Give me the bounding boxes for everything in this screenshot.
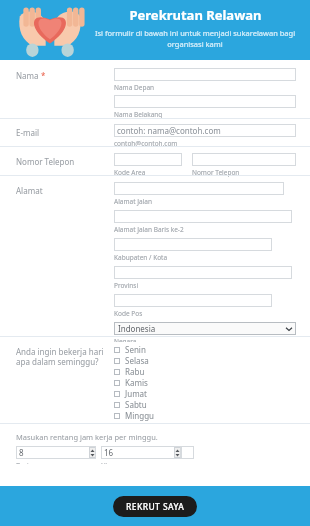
staticText: Hingga (101, 461, 124, 464)
staticText: Indonesia (118, 323, 156, 334)
staticText: Kamis (125, 377, 148, 388)
staticText: Alamat (16, 185, 43, 196)
button[interactable]: REKRUT SAYA (113, 496, 197, 517)
staticText: Nomor Telepon (16, 156, 75, 167)
staticText: contoh: nama@contoh.com (117, 125, 221, 136)
staticText: Nomor Telepon (192, 168, 240, 177)
button[interactable]: contoh: nama@contoh.com (114, 124, 296, 137)
staticText: Kode Pos (114, 309, 143, 318)
staticText: Minggu (125, 410, 155, 421)
button[interactable]: Sabtu (114, 399, 147, 410)
staticText: Nama Depan (114, 83, 155, 92)
button[interactable]: Selasa (114, 355, 149, 366)
staticText: Masukan rentang jam kerja per minggu. (16, 432, 158, 442)
staticText: Sabtu (125, 399, 147, 410)
button[interactable]: 8 (16, 446, 96, 459)
button[interactable]: Kamis (114, 377, 148, 388)
button[interactable] (114, 210, 292, 223)
button[interactable]: 16 (101, 446, 181, 459)
button[interactable] (114, 294, 272, 307)
staticText: Provinsi (114, 281, 139, 290)
button[interactable] (114, 238, 272, 251)
staticText: 16 (104, 447, 174, 458)
staticText: Anda ingin bekerja hari apa dalam seming… (16, 346, 108, 367)
staticText: Isi formulir di bawah ini untuk menjadi … (86, 28, 304, 49)
staticText: Rabu (125, 366, 145, 377)
other: Stepper (89, 447, 96, 458)
staticText: 8 (19, 447, 89, 458)
staticText: Negara (114, 337, 137, 342)
button[interactable]: Negara (114, 322, 296, 335)
button[interactable] (114, 68, 296, 81)
button[interactable]: Jumat (114, 388, 147, 399)
staticText: Perekrutan Relawan (129, 6, 262, 24)
button[interactable] (114, 182, 284, 195)
staticText: Nama (16, 70, 39, 81)
button[interactable] (192, 153, 296, 166)
staticText: Kabupaten / Kota (114, 253, 168, 262)
staticText: Selasa (125, 355, 149, 366)
staticText: * (41, 70, 46, 81)
button[interactable]: Senin (114, 344, 146, 355)
staticText: Senin (125, 344, 146, 355)
staticText: contoh@contoh.com (114, 139, 178, 148)
staticText: Alamat Jalan (114, 197, 152, 206)
staticText: E-mail (16, 127, 40, 138)
staticText: REKRUT SAYA (126, 501, 185, 513)
button[interactable]: Minggu (114, 410, 155, 421)
staticText: Dari (16, 461, 29, 464)
button[interactable]: Rabu (114, 366, 145, 377)
other: Stepper (174, 447, 181, 458)
staticText: Jumat (125, 388, 147, 399)
staticText: Alamat Jalan Baris ke-2 (114, 225, 184, 234)
staticText: Kode Area (114, 168, 146, 177)
button[interactable] (114, 266, 292, 279)
staticText: Nama Belakang (114, 110, 163, 119)
button[interactable] (114, 153, 182, 166)
button[interactable] (114, 95, 296, 108)
